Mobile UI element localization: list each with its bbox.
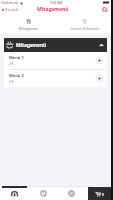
- button[interactable]: Warenkorb: [88, 187, 111, 200]
- staticText: 3 €: [9, 79, 14, 84]
- button[interactable]: Speisen & Getränke: [56, 14, 113, 33]
- button[interactable]: Mitagsmenü: [4, 38, 107, 52]
- button[interactable]: Suchen: [101, 6, 109, 14]
- button[interactable]: Hinzufügen: [95, 74, 104, 83]
- button[interactable]: Information: [29, 186, 57, 200]
- button[interactable]: Mitagsmenü: [0, 14, 56, 33]
- staticText: 9:30 AM: [50, 1, 63, 5]
- button[interactable]: Zurück: [0, 6, 21, 14]
- staticText: 2 €: [9, 61, 14, 66]
- button[interactable]: Einstellungen: [57, 186, 85, 200]
- staticText: Speisen & Getränke: [70, 27, 100, 31]
- staticText: Menü 2: [9, 73, 24, 78]
- staticText: 0: [102, 192, 105, 197]
- staticText: Zurück: [5, 7, 19, 13]
- staticText: Mitagsmenü: [37, 6, 69, 13]
- button[interactable]: Hinzufügen: [95, 56, 104, 65]
- staticText: Mitagsmenü: [19, 27, 38, 31]
- button[interactable]: Menü 2: [4, 70, 107, 87]
- button[interactable]: Start: [0, 186, 29, 200]
- staticText: Menü 1: [9, 55, 24, 60]
- staticText: Mitagsmenü: [16, 42, 47, 49]
- button[interactable]: Menü 1: [4, 52, 107, 69]
- staticText: Telekom.de: [1, 1, 19, 5]
